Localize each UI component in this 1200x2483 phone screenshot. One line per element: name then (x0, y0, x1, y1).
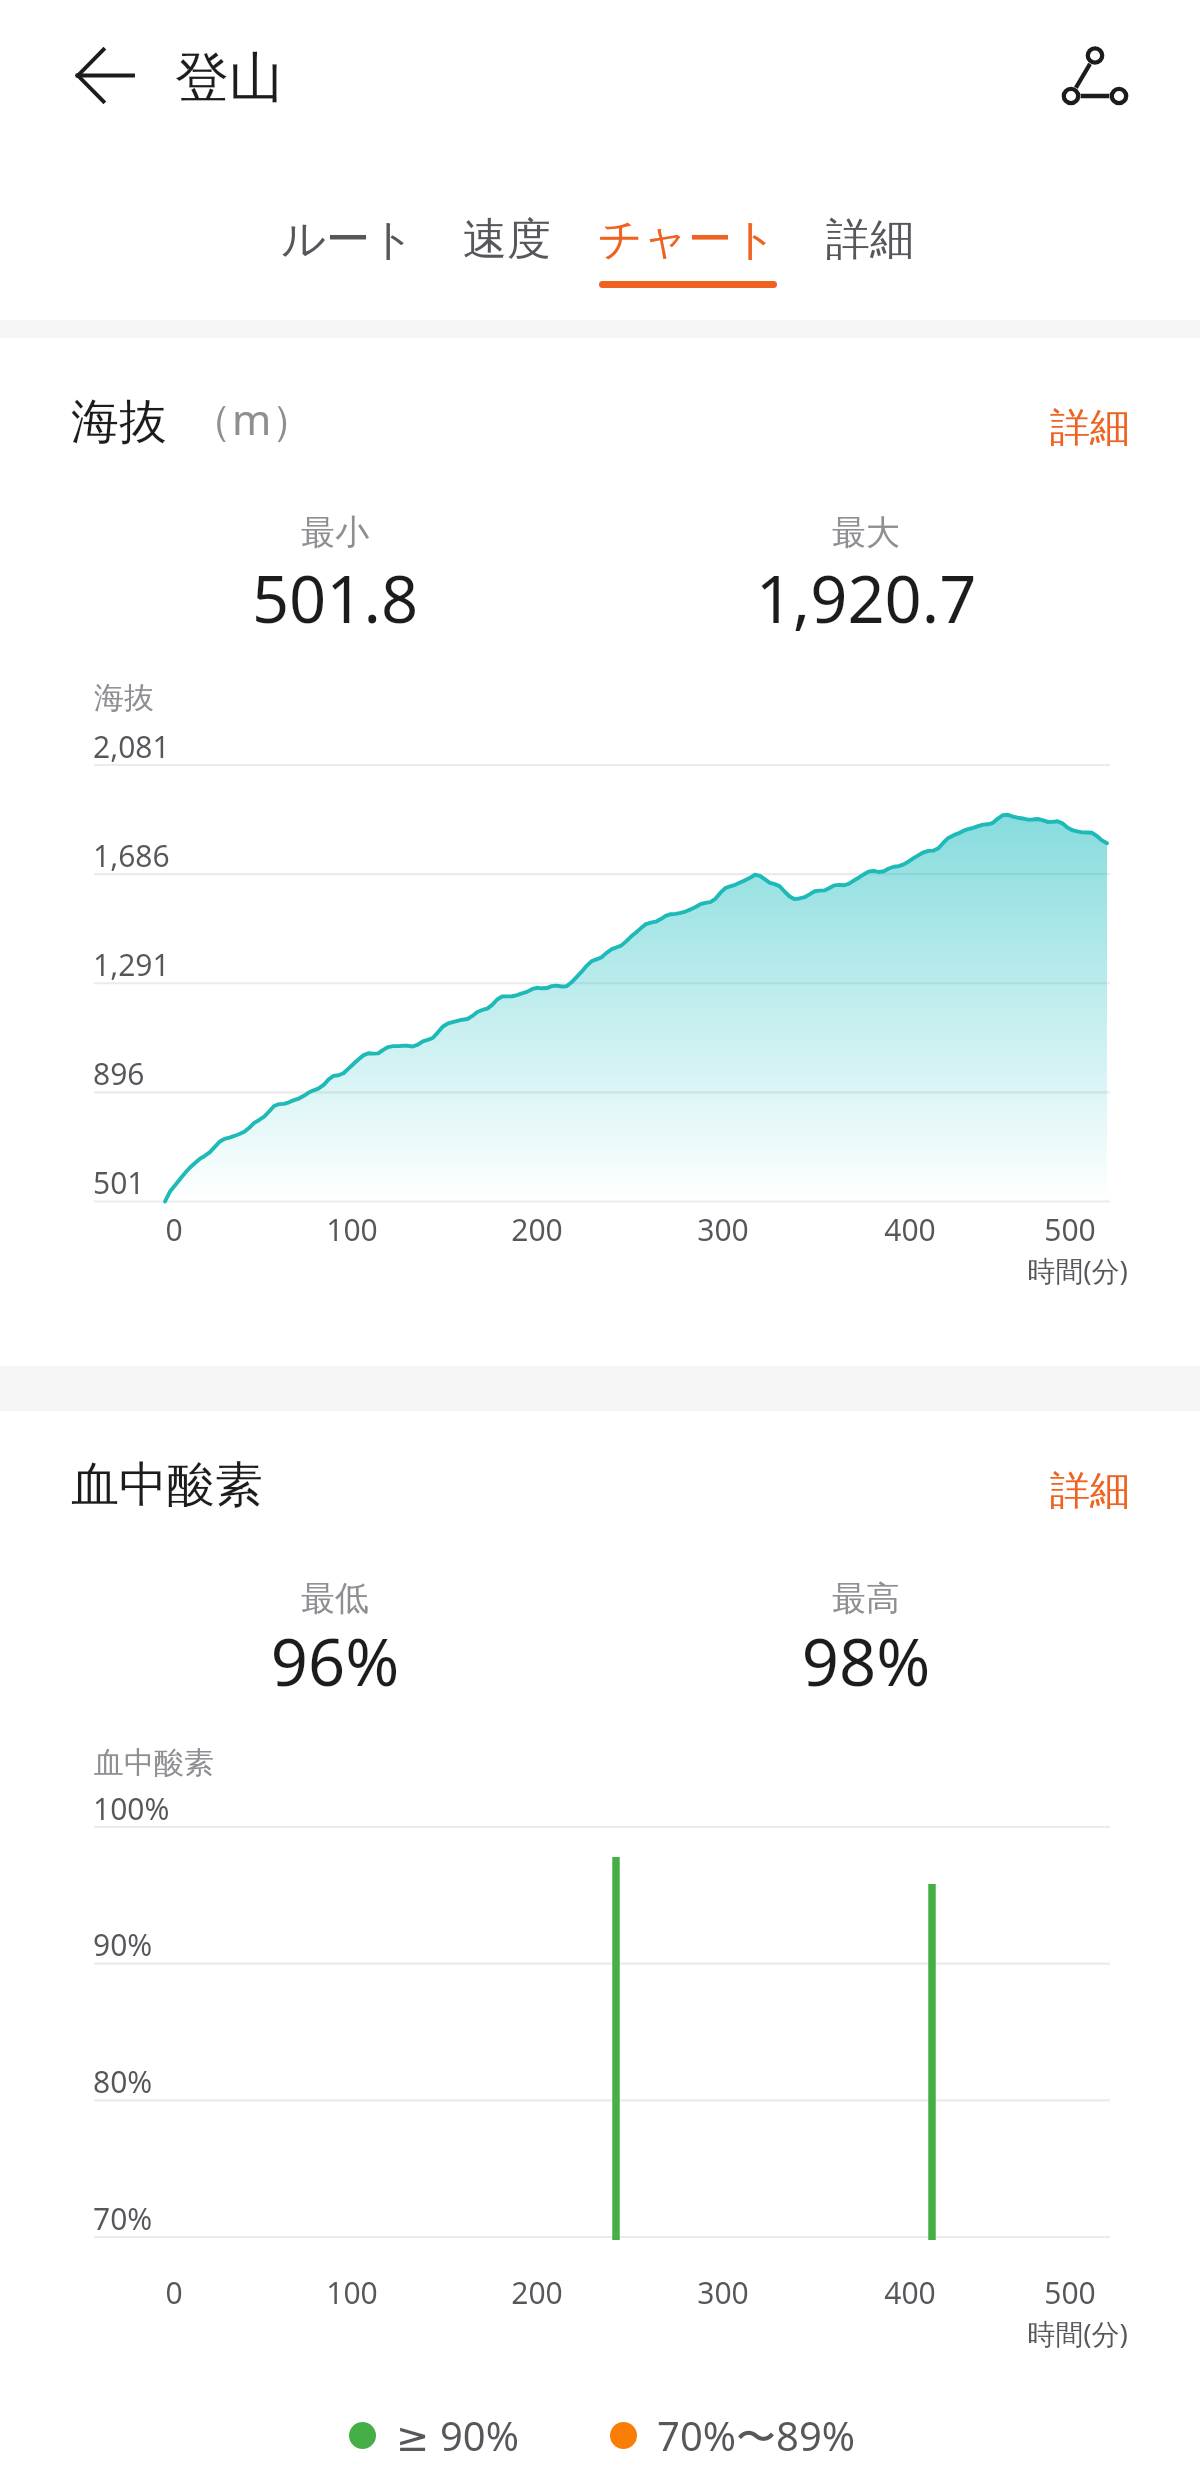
staticText: 最小 (160, 511, 510, 554)
staticText: 詳細 (826, 212, 914, 267)
staticText: 98% (691, 1617, 1041, 1706)
staticText: 詳細 (1050, 402, 1130, 452)
staticText: 最低 (160, 1577, 510, 1620)
staticText: 100 (272, 2272, 432, 2313)
staticText: 80% (93, 2061, 153, 2102)
staticText: 詳細 (1050, 1465, 1130, 1515)
staticText: 896 (93, 1053, 145, 1094)
staticText: 登山 (175, 44, 283, 112)
staticText: 200 (457, 1209, 617, 1250)
button[interactable]: 速度 (432, 212, 582, 304)
staticText: 70% (93, 2198, 153, 2239)
staticText: 時間(分) (900, 1251, 1128, 1289)
button[interactable]: 詳細 (795, 212, 945, 304)
button[interactable]: チャート (581, 212, 795, 304)
staticText: 時間(分) (900, 2314, 1128, 2352)
button[interactable]: ≥ 90% (349, 2408, 519, 2464)
staticText: 501 (93, 1162, 145, 1203)
staticText: チャート (598, 212, 778, 267)
staticText: （m） (190, 390, 314, 447)
staticText: 血中酸素 (71, 1455, 263, 1515)
staticText: 0 (94, 1209, 254, 1250)
staticText: ≥ 90% (396, 2408, 519, 2462)
button[interactable]: ルート (258, 212, 438, 304)
staticText: 501.8 (160, 554, 510, 643)
staticText: 200 (457, 2272, 617, 2313)
button[interactable]: Share (1048, 28, 1144, 124)
staticText: 0 (94, 2272, 254, 2313)
staticText: 96% (160, 1617, 510, 1706)
staticText: 最大 (691, 511, 1041, 554)
staticText: 100 (272, 1209, 432, 1250)
staticText: 90% (93, 1924, 153, 1965)
button[interactable]: Back (57, 28, 153, 124)
staticText: 1,291 (93, 944, 170, 985)
staticText: 500 (990, 1209, 1150, 1250)
staticText: 100% (93, 1788, 170, 1829)
staticText: 500 (990, 2272, 1150, 2313)
staticText: 1,686 (93, 835, 170, 876)
staticText: 海抜 (94, 679, 154, 717)
staticText: ルート (281, 212, 416, 267)
staticText: 300 (643, 2272, 803, 2313)
staticText: 1,920.7 (691, 554, 1041, 643)
staticText: 速度 (463, 212, 551, 267)
staticText: 最高 (691, 1577, 1041, 1620)
staticText: 海抜 (71, 392, 167, 452)
staticText: 血中酸素 (94, 1744, 214, 1782)
staticText: 400 (830, 2272, 990, 2313)
staticText: 70%〜89% (657, 2408, 855, 2463)
staticText: 2,081 (93, 726, 170, 767)
button[interactable]: 詳細 (1022, 1450, 1158, 1530)
button[interactable]: 詳細 (1022, 387, 1158, 467)
staticText: 300 (643, 1209, 803, 1250)
button[interactable]: 70%〜89% (610, 2408, 855, 2464)
staticText: 400 (830, 1209, 990, 1250)
